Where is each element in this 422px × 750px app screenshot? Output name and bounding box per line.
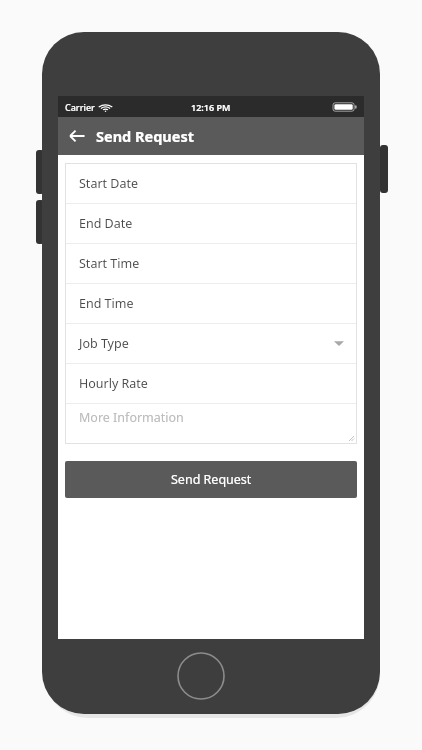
button[interactable]: More Information [65,404,357,443]
button[interactable]: Hourly Rate [65,364,357,403]
staticText: Carrier [65,101,95,113]
button[interactable]: Back [58,117,96,155]
staticText: End Time [79,295,134,312]
button[interactable]: End Time [65,284,357,323]
staticText: Hourly Rate [79,375,148,392]
staticText: Job Type [79,335,129,352]
button[interactable]: End Date [65,204,357,243]
button[interactable]: Send Request [65,461,357,498]
staticText: Send Request [171,471,252,488]
staticText: Start Time [79,255,140,272]
button[interactable]: Start Date [65,164,357,203]
staticText: Send Request [96,126,194,146]
button[interactable]: Job Type [65,324,357,363]
staticText: End Date [79,215,133,232]
staticText: Start Date [79,175,139,192]
staticText: More Information [79,409,184,426]
button[interactable]: Start Time [65,244,357,283]
staticText: 12:16 PM [191,101,231,113]
